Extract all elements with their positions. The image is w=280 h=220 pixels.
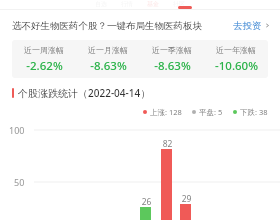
staticText: 100 <box>9 124 25 136</box>
staticText: 上涨: 128 <box>150 107 182 117</box>
staticText: 82 <box>160 138 175 150</box>
staticText: 选不好生物医药个股？一键布局生物医药板块 <box>12 20 202 32</box>
staticText: -2.62% <box>26 58 63 74</box>
other: 去投资 <box>265 23 270 28</box>
staticText: 50 <box>14 176 25 188</box>
staticText: 近一季涨幅 <box>152 45 192 55</box>
staticText: 去投资 <box>233 20 262 32</box>
button[interactable]: 选不好生物医药个股？一键布局生物医药板块 <box>12 17 270 34</box>
staticText: -10.60% <box>215 58 258 74</box>
staticText: 平盘: 5 <box>199 107 223 117</box>
staticText: 近一月涨幅 <box>88 45 128 55</box>
staticText: 社区 <box>173 0 185 8</box>
staticText: -8.63% <box>90 58 127 74</box>
staticText: 近一周涨幅 <box>24 45 64 55</box>
staticText: 近一年涨幅 <box>216 45 256 55</box>
button[interactable]: 社区 <box>173 0 185 8</box>
button[interactable]: 基金 <box>147 0 159 8</box>
button[interactable]: 近一周涨幅 <box>12 40 268 78</box>
staticText: 个股涨跌统计（2022-04-14） <box>18 86 151 99</box>
staticText: 26 <box>139 196 154 208</box>
staticText: 基金 <box>147 0 159 8</box>
staticText: 29 <box>179 193 194 205</box>
staticText: 下跌: 38 <box>240 107 268 117</box>
staticText: -8.63% <box>154 58 191 74</box>
